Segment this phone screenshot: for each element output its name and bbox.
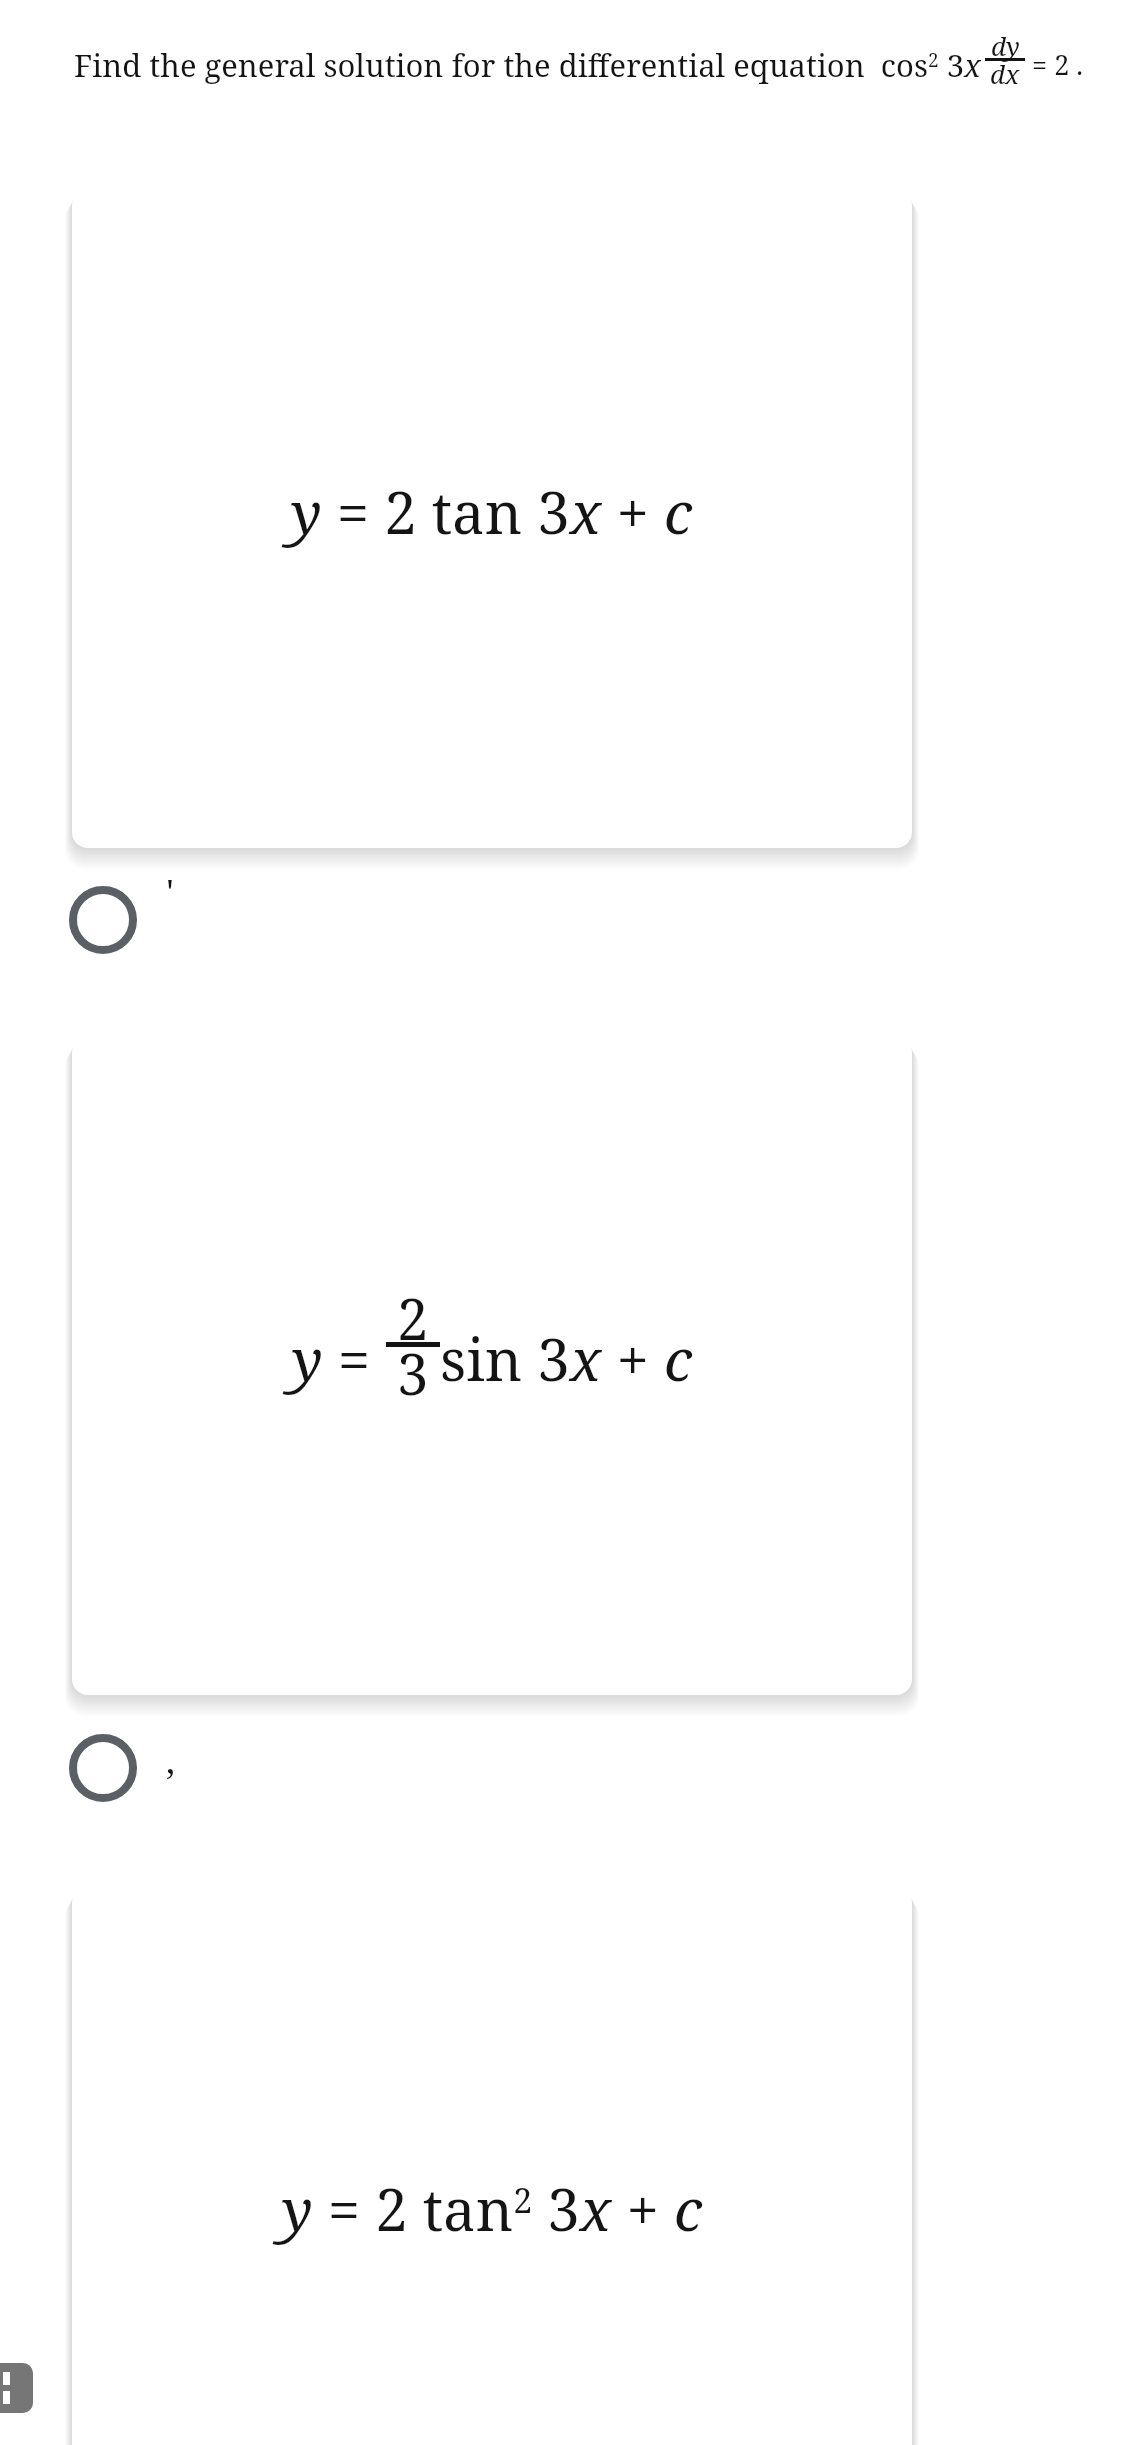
button[interactable]: Open side menu — [0, 2363, 33, 2413]
button[interactable]: y = 2 tan 3x + c — [72, 190, 912, 848]
button[interactable]: Select this answer — [54, 1719, 152, 1817]
staticText: , — [166, 1736, 175, 1785]
button[interactable]: y = — [72, 1037, 912, 1695]
staticText: dy — [991, 28, 1020, 63]
staticText: sin 3x + c — [440, 1319, 693, 1398]
staticText: Find the general solution for the differ… — [74, 44, 981, 86]
staticText: ' — [166, 868, 174, 917]
staticText: y = 2 tan 3x + c — [291, 472, 693, 551]
staticText: 2 — [397, 1280, 429, 1356]
button[interactable]: y = 2 tan2 3x + c — [72, 1887, 912, 2445]
staticText: y = 2 tan2 3x + c — [282, 2169, 703, 2248]
staticText: = 2 . — [1025, 46, 1083, 83]
staticText: dx — [990, 56, 1020, 91]
staticText: y = — [292, 1319, 386, 1398]
staticText: 3 — [397, 1335, 429, 1411]
button[interactable]: Select this answer — [54, 871, 152, 969]
